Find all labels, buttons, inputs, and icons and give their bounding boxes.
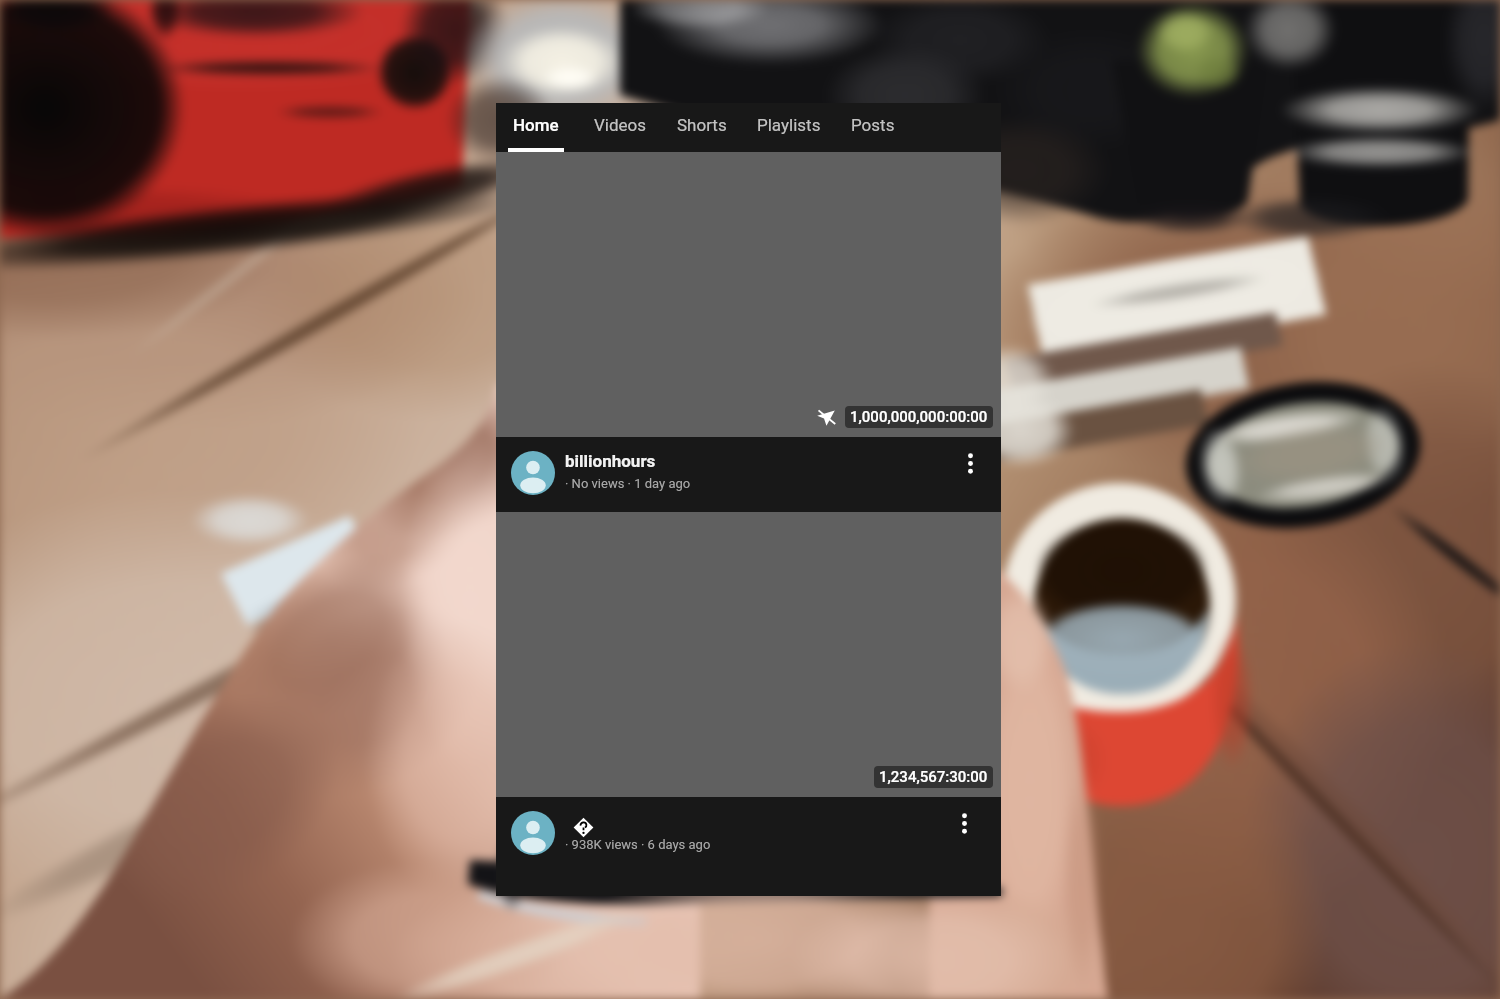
button[interactable]: Not shared [496,152,1001,437]
staticText: Playlists [757,115,821,135]
button[interactable]: Shorts [662,103,742,152]
other: Not shared [815,406,837,428]
button[interactable]: Home [493,103,579,152]
staticText: 1,234,567:30:00 [879,768,988,786]
staticText: Home [513,115,559,135]
button[interactable]: More options [946,805,982,841]
button[interactable]: More options [952,445,988,481]
button[interactable]: billionhours [496,437,1001,512]
button[interactable]: Posts [836,103,910,152]
staticText: billionhours [565,451,656,471]
button[interactable]: Videos [579,103,662,152]
staticText: 1,000,000,000:00:00 [850,408,988,426]
staticText: · 938K views · 6 days ago [565,837,711,852]
button[interactable]: · 938K views · 6 days ago [496,797,1001,872]
button[interactable]: Playlists [742,103,836,152]
button[interactable]: 1,234,567:30:00 [496,512,1001,797]
staticText: Posts [851,115,895,135]
staticText: · No views · 1 day ago [565,476,691,491]
staticText: Videos [594,115,647,135]
staticText: Shorts [677,115,727,135]
